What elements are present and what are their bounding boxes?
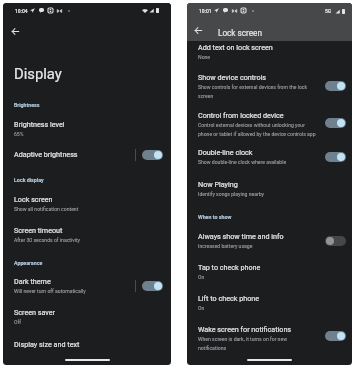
staticText: Control from locked device — [198, 111, 284, 119]
staticText: None — [198, 54, 211, 60]
staticText: When to show — [198, 214, 232, 220]
staticText: Tap to check phone — [198, 263, 261, 271]
button[interactable]: Adaptive brightness — [3, 144, 171, 166]
staticText: Lock screen — [218, 28, 262, 38]
button[interactable]: Add text on lock screen — [187, 39, 352, 67]
staticText: Brightness level — [14, 120, 65, 128]
staticText: 10:01 — [199, 8, 212, 14]
button[interactable]: Toggle on — [325, 81, 346, 91]
button[interactable]: Now Playing — [187, 174, 352, 204]
button[interactable]: Back — [192, 24, 205, 37]
staticText: 65% — [14, 131, 24, 137]
staticText: Lock display — [14, 177, 44, 183]
staticText: Show double-line clock where available — [198, 159, 287, 165]
staticText: Appearance — [14, 260, 43, 266]
button[interactable]: Always show time and info — [187, 226, 352, 256]
button[interactable]: Show device controls — [187, 67, 352, 105]
staticText: Screen saver — [14, 308, 56, 316]
staticText: After 30 seconds of inactivity — [14, 237, 81, 243]
staticText: Lift to check phone — [198, 294, 260, 302]
button[interactable]: Lock screen — [3, 189, 171, 219]
button[interactable]: Lift to check phone — [187, 288, 352, 318]
staticText: 10:04 — [15, 8, 28, 14]
staticText: Show all notification content — [14, 206, 79, 212]
staticText: Double-line clock — [198, 148, 253, 156]
button[interactable]: Toggle on — [325, 331, 346, 341]
button[interactable]: Toggle off — [325, 236, 346, 246]
button[interactable]: Control from locked device — [187, 105, 352, 141]
button[interactable]: Toggle on — [325, 152, 346, 162]
staticText: When screen is dark, it turns on for new… — [198, 336, 294, 351]
button[interactable]: Toggle on — [325, 118, 346, 128]
staticText: 5G — [325, 8, 332, 14]
staticText: Display size and text — [14, 340, 80, 348]
staticText: Brightness — [14, 102, 40, 108]
staticText: Now Playing — [198, 180, 238, 188]
staticText: On — [198, 305, 205, 311]
staticText: Add text on lock screen — [198, 43, 273, 51]
button[interactable]: Brightness level — [3, 114, 171, 142]
button[interactable]: Screen timeout — [3, 220, 171, 250]
staticText: Increased battery usage — [198, 243, 253, 249]
staticText: Always show time and info — [198, 232, 284, 240]
staticText: Will never turn off automatically — [14, 288, 86, 294]
staticText: Adaptive brightness — [14, 150, 78, 158]
staticText: Display — [14, 65, 62, 82]
button[interactable]: Wake screen for notifications — [187, 319, 352, 353]
staticText: Identify songs playing nearby — [198, 191, 264, 197]
button[interactable]: Toggle on — [142, 150, 163, 160]
button[interactable]: Screen saver — [3, 302, 171, 332]
staticText: Wake screen for notifications — [198, 325, 292, 333]
staticText: Off — [14, 319, 22, 325]
staticText: On — [198, 274, 205, 280]
staticText: Show device controls — [198, 73, 267, 81]
button[interactable]: Back — [9, 25, 22, 38]
button[interactable]: Tap to check phone — [187, 257, 352, 287]
staticText: Dark theme — [14, 277, 51, 285]
button[interactable]: Dark theme — [3, 271, 171, 301]
button[interactable]: Display size and text — [3, 334, 171, 354]
staticText: Show controls for external devices from … — [198, 84, 312, 99]
staticText: Screen timeout — [14, 226, 63, 234]
staticText: Lock screen — [14, 195, 53, 203]
button[interactable]: Double-line clock — [187, 142, 352, 172]
staticText: Control external devices without unlocki… — [198, 122, 316, 137]
button[interactable]: Toggle on — [142, 281, 163, 291]
